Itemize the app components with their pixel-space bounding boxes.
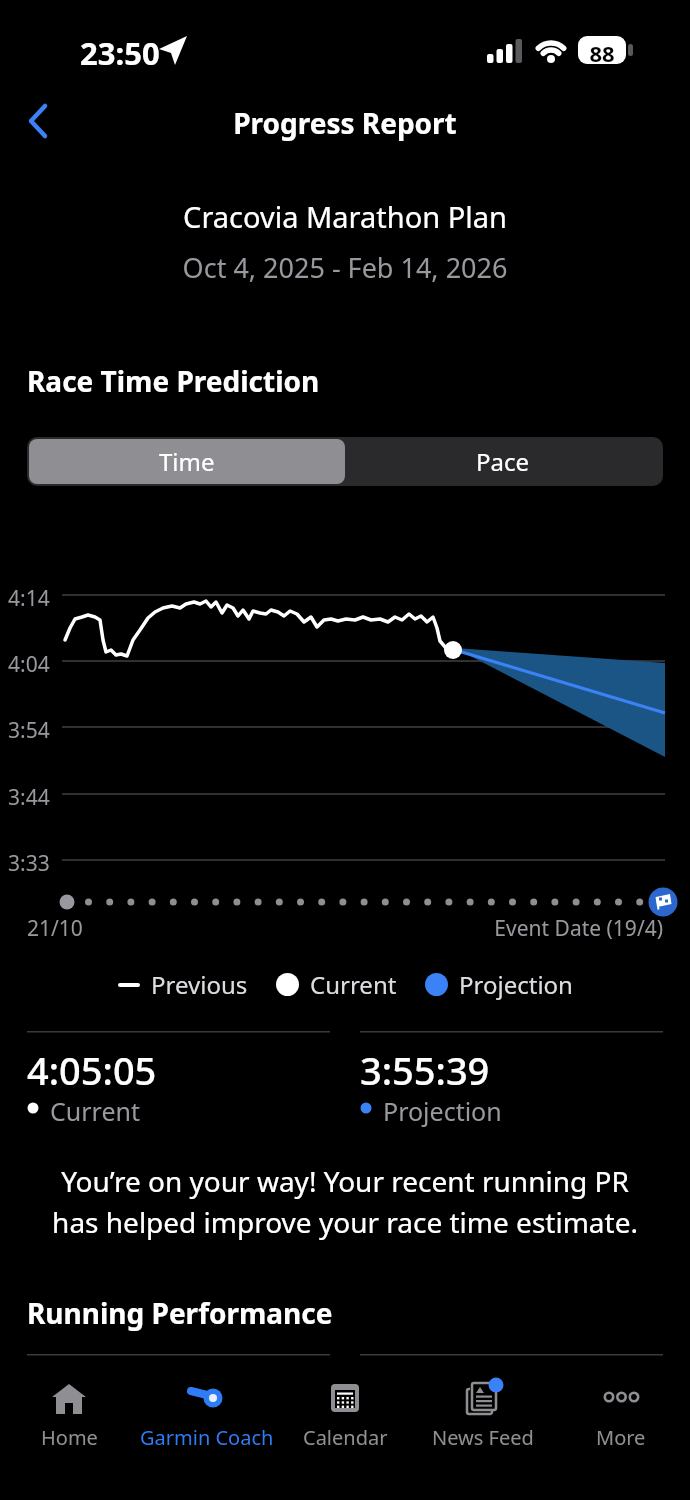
staticText: Progress Report	[0, 104, 690, 142]
staticText: Oct 4, 2025 - Feb 14, 2026	[0, 249, 690, 286]
staticText: 4:04	[8, 650, 50, 679]
staticText: 23:50	[80, 32, 160, 74]
staticText: Pace	[476, 445, 530, 478]
staticText: News Feed	[432, 1424, 534, 1451]
button[interactable]: News Feed	[414, 1382, 552, 1454]
button[interactable]: Time	[29, 439, 345, 484]
staticText: Current	[310, 968, 397, 1001]
staticText: 21/10	[27, 914, 83, 943]
staticText: Garmin Coach	[140, 1424, 274, 1451]
staticText: Time	[159, 445, 215, 478]
staticText: 4:05:05	[27, 1044, 157, 1096]
staticText: 3:55:39	[360, 1044, 490, 1096]
staticText: Cracovia Marathon Plan	[0, 197, 690, 236]
staticText: Running Performance	[27, 1294, 333, 1332]
button[interactable]: Home	[0, 1382, 138, 1454]
button[interactable]	[14, 96, 66, 148]
button[interactable]: Garmin Coach	[138, 1382, 276, 1454]
staticText: Race Time Prediction	[27, 362, 320, 400]
button[interactable]: Pace	[345, 439, 661, 484]
staticText: Projection	[459, 968, 573, 1001]
staticText: 4:14	[8, 584, 50, 613]
button[interactable]: Calendar	[276, 1382, 414, 1454]
staticText: Calendar	[303, 1424, 388, 1451]
staticText: 88	[578, 38, 626, 68]
staticText: Current	[50, 1094, 140, 1128]
staticText: More	[596, 1424, 646, 1451]
staticText: 3:33	[8, 849, 50, 878]
staticText: Event Date (19/4)	[0, 914, 663, 943]
staticText: Projection	[383, 1094, 502, 1128]
staticText: Previous	[151, 968, 248, 1001]
staticText: Home	[41, 1424, 98, 1451]
staticText: 3:54	[8, 716, 50, 745]
staticText: 3:44	[8, 783, 50, 812]
staticText: You’re on your way! Your recent running …	[0, 1162, 690, 1241]
button[interactable]: More	[552, 1382, 690, 1454]
